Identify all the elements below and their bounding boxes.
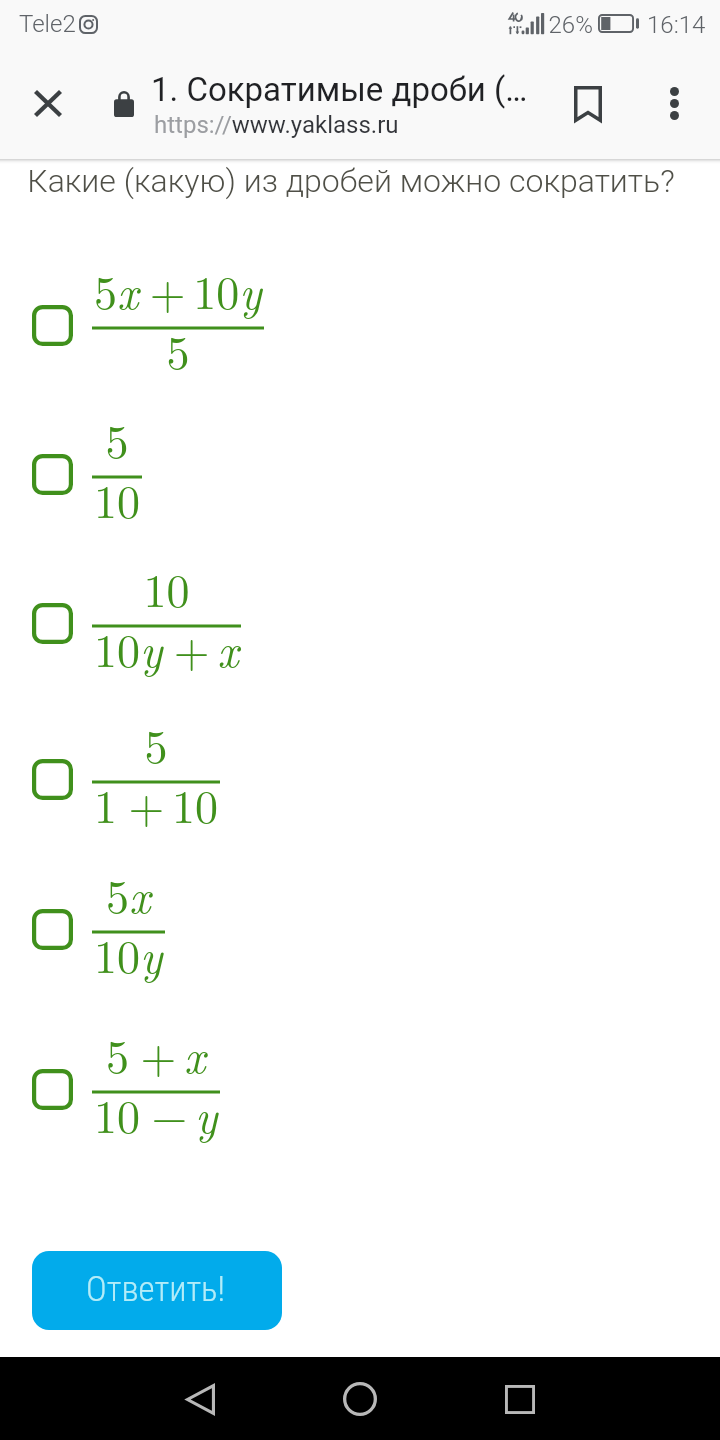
button[interactable]: Answer option 5x+10y / 5 <box>0 262 720 390</box>
button[interactable]: Answer option 5 / 10 <box>0 411 720 539</box>
button[interactable]: Back <box>164 1363 236 1435</box>
button[interactable]: Answer option 10 / 10y+x <box>0 560 720 688</box>
button[interactable]: Answer option 5+x / 10-y <box>0 1026 720 1154</box>
button[interactable]: Answer option 5 / 1+10 <box>0 716 720 844</box>
button[interactable]: More options <box>638 67 710 139</box>
button[interactable]: Answer option 5x / 10y <box>0 866 720 994</box>
button[interactable]: Bookmark <box>552 68 624 140</box>
button[interactable]: Close <box>12 67 84 139</box>
button[interactable]: Home <box>324 1363 396 1435</box>
button[interactable]: Recent apps <box>484 1363 556 1435</box>
button[interactable] <box>32 1251 282 1330</box>
